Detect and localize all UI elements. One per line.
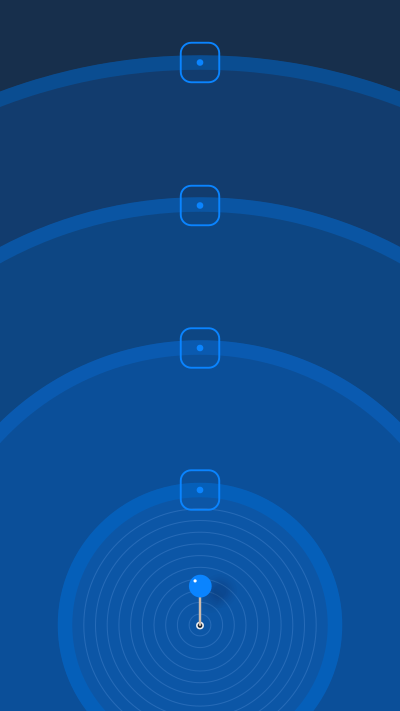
button[interactable]: Range marker: [181, 186, 219, 225]
button[interactable]: Range marker: [181, 470, 219, 510]
button[interactable]: Range marker: [181, 43, 219, 82]
button[interactable]: Range marker: [181, 328, 219, 368]
